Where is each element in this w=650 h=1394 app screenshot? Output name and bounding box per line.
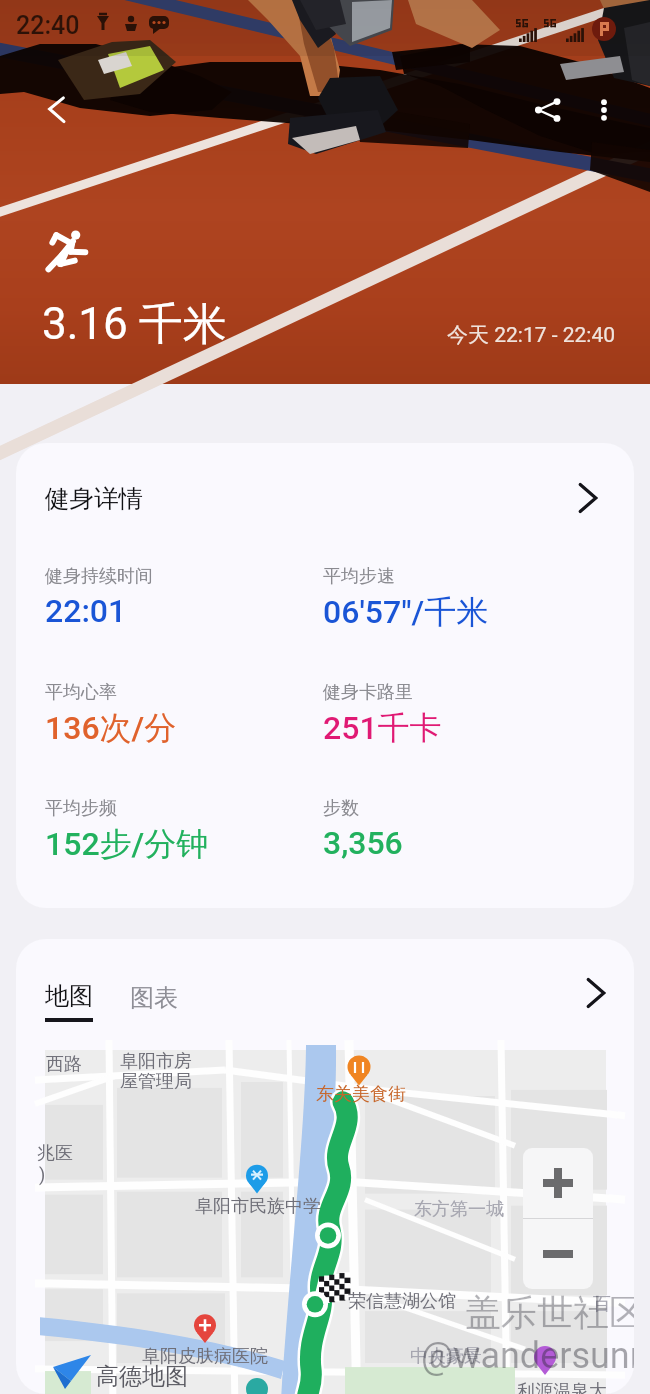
staticText: 健身卡路里 bbox=[323, 681, 413, 704]
button[interactable]: Open map bbox=[578, 975, 614, 1011]
staticText: 阜阳市房 bbox=[120, 1050, 192, 1073]
button[interactable]: Zoom in bbox=[523, 1148, 593, 1218]
staticText: 136次/分 bbox=[45, 708, 177, 748]
button[interactable]: Back bbox=[31, 85, 79, 133]
staticText: 中央豪景 bbox=[410, 1345, 482, 1368]
staticText: ) bbox=[39, 1164, 46, 1185]
staticText: 152步/分钟 bbox=[45, 824, 209, 864]
staticText: 屋管理局 bbox=[120, 1070, 192, 1093]
staticText: 阜阳皮肤病医院 bbox=[142, 1345, 268, 1368]
button[interactable]: Share bbox=[524, 86, 572, 134]
staticText: @wandersunny bbox=[421, 1335, 634, 1377]
button[interactable]: 图表 bbox=[130, 983, 178, 1013]
button[interactable]: Zoom out bbox=[523, 1219, 593, 1289]
staticText: 3,356 bbox=[323, 824, 403, 862]
button[interactable]: 健身详情 bbox=[16, 443, 634, 908]
staticText: 兆医 bbox=[37, 1142, 73, 1165]
staticText: 今天 22:17 - 22:40 bbox=[447, 322, 616, 348]
staticText: 东方第一城 bbox=[414, 1198, 504, 1221]
staticText: 阜阳市民族中学 bbox=[195, 1195, 321, 1218]
staticText: 22:01 bbox=[45, 592, 127, 630]
staticText: 西路 bbox=[46, 1053, 82, 1076]
staticText: 步数 bbox=[323, 797, 359, 820]
staticText: 平均步速 bbox=[323, 565, 395, 588]
staticText: 盖乐世社区 bbox=[465, 1290, 634, 1335]
staticText: 22:40 bbox=[16, 11, 80, 40]
staticText: 利源温泉大 bbox=[517, 1380, 607, 1394]
staticText: 百 bbox=[593, 1293, 611, 1316]
staticText: 平均步频 bbox=[45, 797, 117, 820]
staticText: 荣信慧湖公馆 bbox=[348, 1290, 456, 1313]
staticText: 平均心率 bbox=[45, 681, 117, 704]
staticText: 06'57"/千米 bbox=[323, 592, 489, 632]
staticText: 高德地图 bbox=[96, 1362, 188, 1391]
staticText: 健身详情 bbox=[45, 483, 143, 514]
staticText: 地图 bbox=[45, 981, 93, 1011]
staticText: 健身持续时间 bbox=[45, 565, 153, 588]
button[interactable]: 地图 bbox=[45, 981, 93, 1022]
staticText: 东关美食街 bbox=[316, 1083, 406, 1106]
button[interactable]: 西路 bbox=[45, 1050, 606, 1394]
staticText: 3.16 千米 bbox=[42, 297, 227, 352]
button[interactable]: More options bbox=[580, 86, 628, 134]
staticText: 251千卡 bbox=[323, 708, 442, 748]
